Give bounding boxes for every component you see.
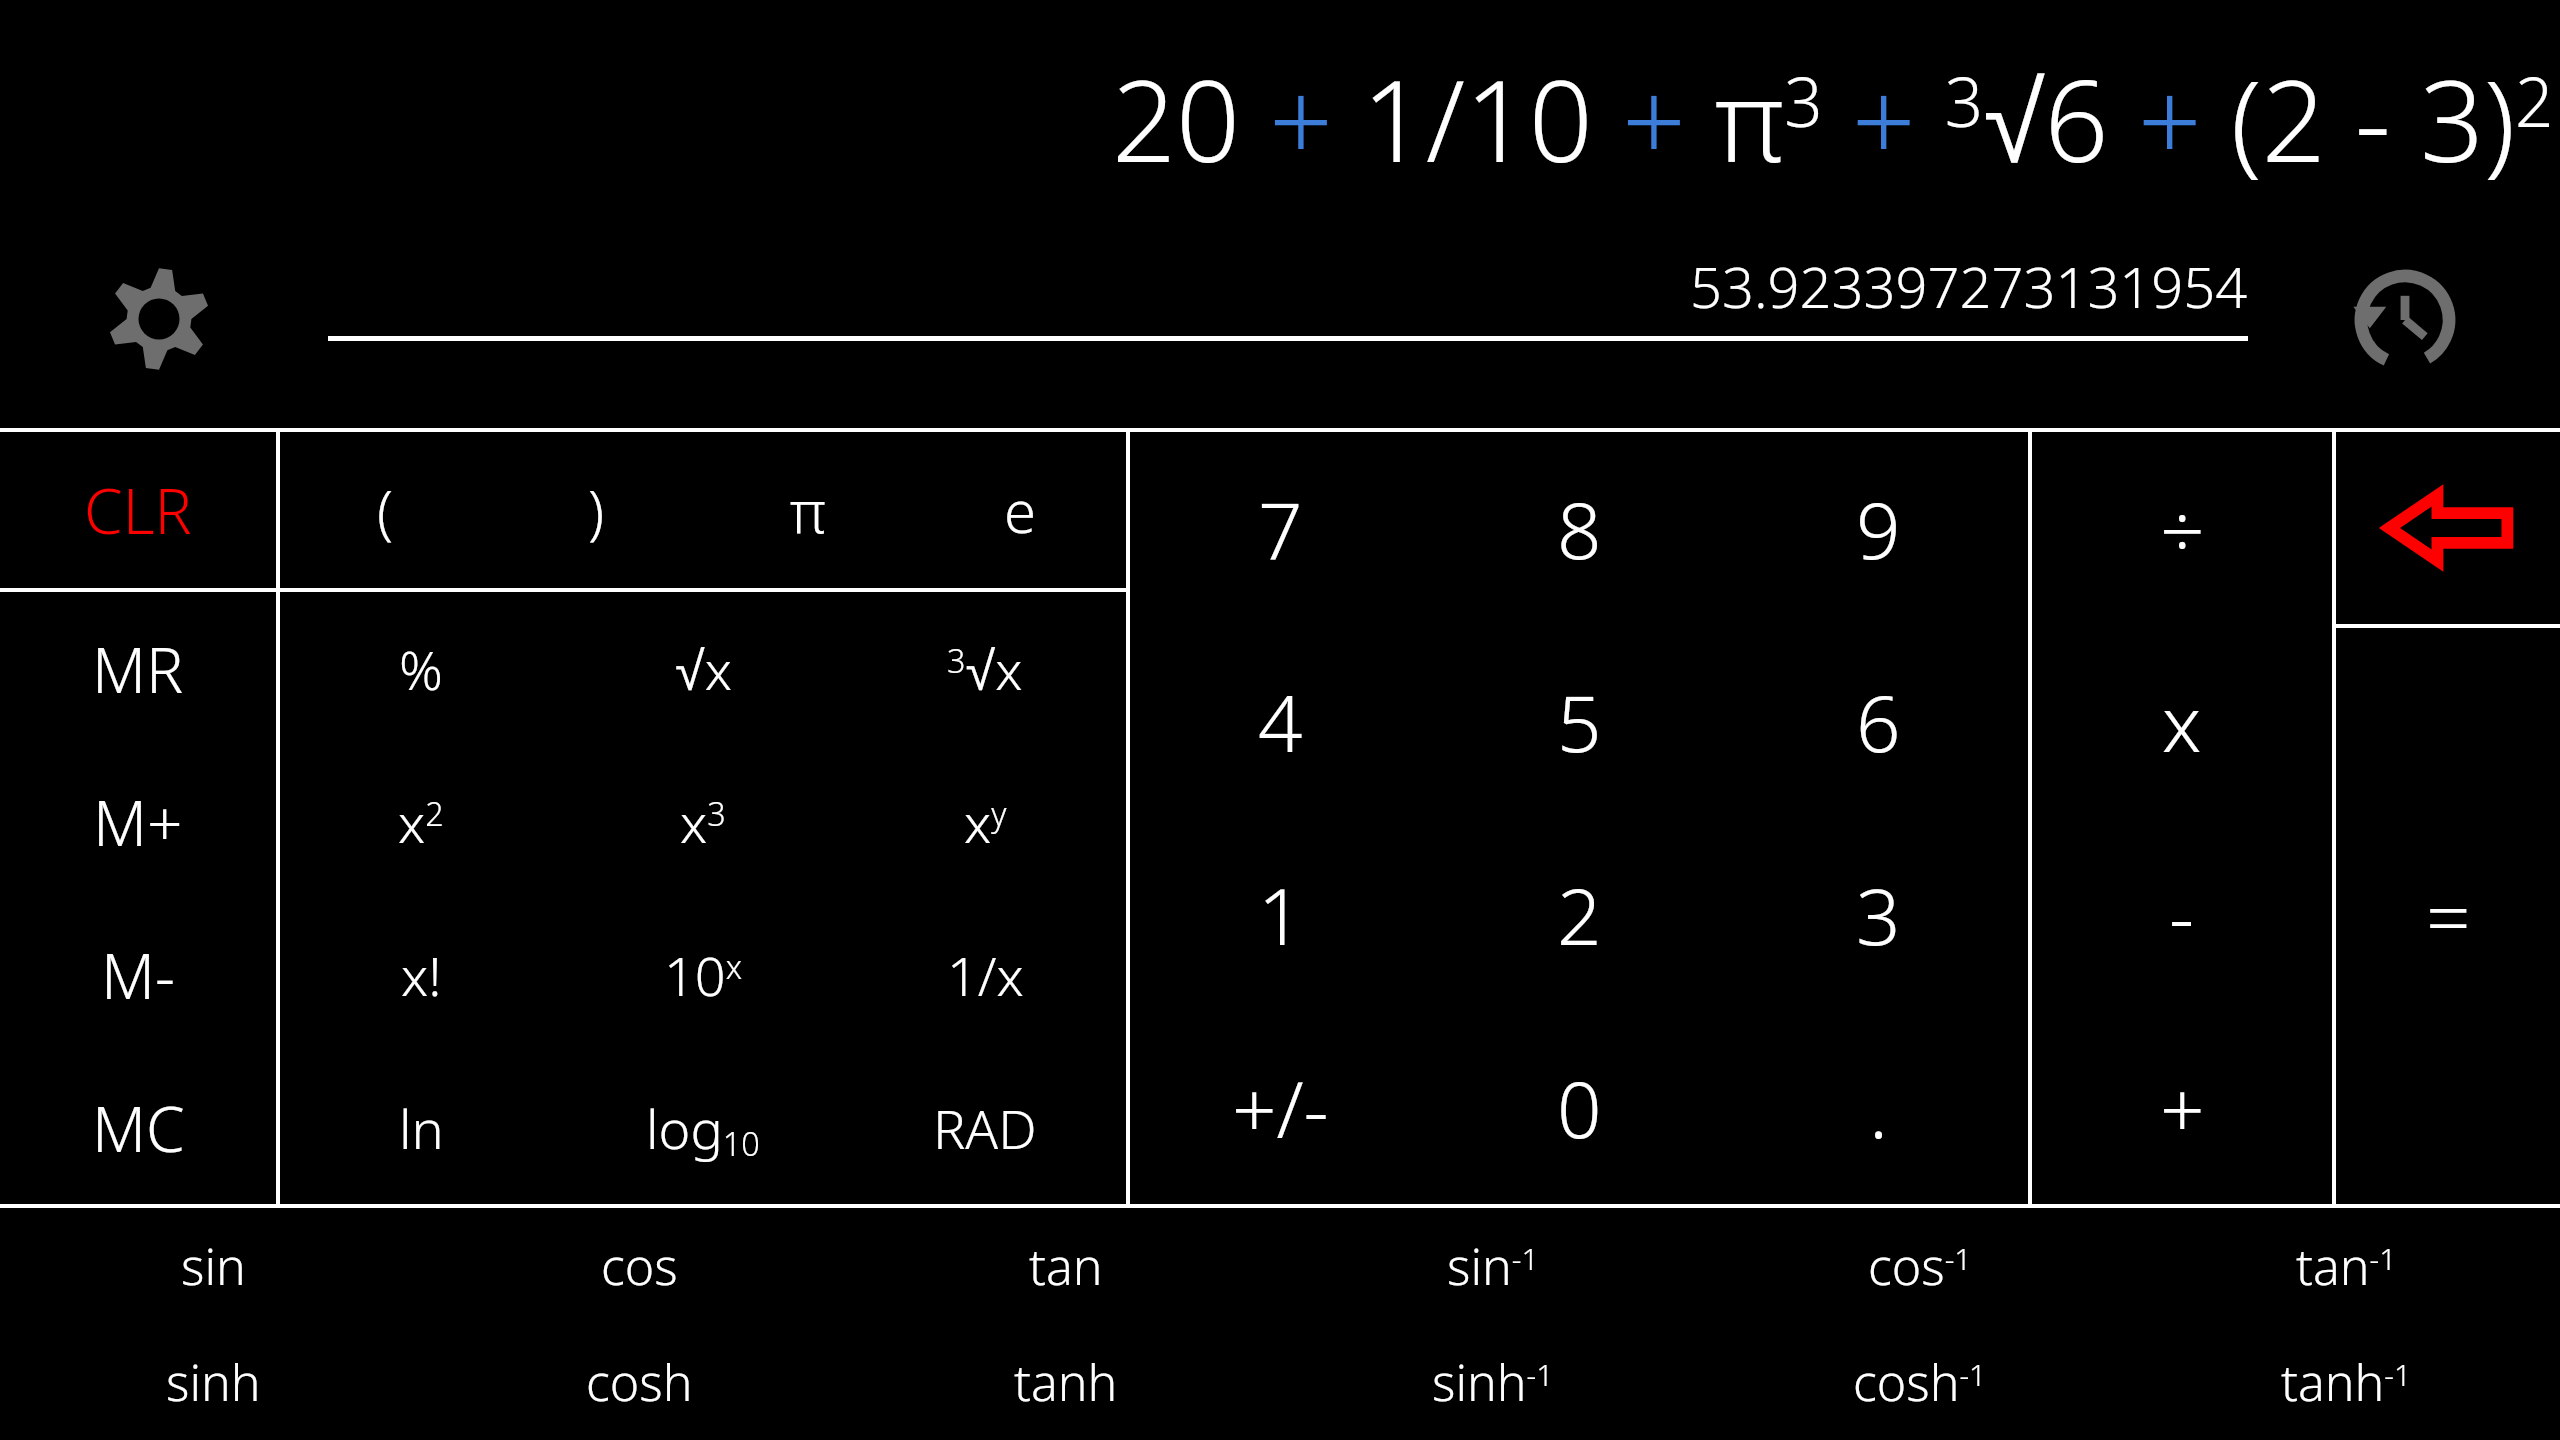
- button[interactable]: 1: [1130, 818, 1430, 1011]
- button[interactable]: tanh-1: [2133, 1324, 2560, 1440]
- button[interactable]: %: [280, 592, 562, 745]
- button[interactable]: π: [702, 432, 914, 588]
- staticText: %: [399, 632, 443, 706]
- staticText: =: [2426, 863, 2471, 969]
- button[interactable]: Backspace: [2336, 432, 2560, 624]
- button[interactable]: MC: [0, 1051, 276, 1204]
- staticText: 1/x: [947, 938, 1024, 1012]
- button[interactable]: 5: [1430, 625, 1729, 818]
- staticText: cos: [601, 1232, 678, 1300]
- button[interactable]: 1/x: [844, 898, 1126, 1051]
- staticText: 20 + 1/10 + π3 + 3√6 + (2 - 3)2: [1112, 42, 2554, 195]
- staticText: x3: [680, 785, 726, 859]
- staticText: tan: [1029, 1232, 1103, 1300]
- button[interactable]: sin: [0, 1208, 426, 1324]
- staticText: 0: [1557, 1055, 1602, 1161]
- button[interactable]: ): [491, 432, 702, 588]
- staticText: 3√x: [947, 632, 1023, 706]
- staticText: 7: [1258, 476, 1303, 582]
- staticText: +/-: [1232, 1055, 1329, 1161]
- staticText: M+: [93, 780, 183, 864]
- staticText: tanh-1: [2281, 1348, 2412, 1416]
- button[interactable]: ÷: [2032, 432, 2332, 625]
- staticText: RAD: [933, 1091, 1037, 1165]
- button[interactable]: 0: [1430, 1011, 1729, 1204]
- staticText: 2: [1557, 862, 1602, 968]
- staticText: 1: [1258, 862, 1303, 968]
- button[interactable]: 3: [1729, 818, 2028, 1011]
- staticText: .: [1869, 1055, 1889, 1161]
- staticText: e: [1004, 471, 1037, 550]
- staticText: x: [2162, 669, 2202, 775]
- staticText: CLR: [84, 468, 192, 552]
- button[interactable]: sin-1: [1279, 1208, 1706, 1324]
- button[interactable]: +/-: [1130, 1011, 1430, 1204]
- button[interactable]: RAD: [844, 1051, 1126, 1204]
- staticText: log10: [646, 1091, 760, 1165]
- button[interactable]: cosh-1: [1706, 1324, 2133, 1440]
- staticText: 6: [1856, 669, 1901, 775]
- staticText: x2: [398, 785, 444, 859]
- staticText: 53.923397273131954: [1690, 248, 2248, 324]
- staticText: cos-1: [1868, 1232, 1972, 1300]
- button[interactable]: History: [2350, 265, 2460, 375]
- button[interactable]: x: [2032, 625, 2332, 818]
- button[interactable]: ln: [280, 1051, 562, 1204]
- button[interactable]: x3: [562, 745, 844, 898]
- button[interactable]: 6: [1729, 625, 2028, 818]
- button[interactable]: e: [914, 432, 1126, 588]
- staticText: 8: [1557, 476, 1602, 582]
- button[interactable]: .: [1729, 1011, 2028, 1204]
- button[interactable]: -: [2032, 818, 2332, 1011]
- button[interactable]: M-: [0, 898, 276, 1051]
- button[interactable]: x2: [280, 745, 562, 898]
- button[interactable]: x!: [280, 898, 562, 1051]
- button[interactable]: 2: [1430, 818, 1729, 1011]
- button[interactable]: tan-1: [2133, 1208, 2560, 1324]
- button[interactable]: √x: [562, 592, 844, 745]
- button[interactable]: CLR: [0, 432, 276, 588]
- button[interactable]: xy: [844, 745, 1126, 898]
- staticText: x!: [401, 938, 442, 1012]
- staticText: M-: [101, 933, 176, 1017]
- staticText: √x: [675, 632, 732, 706]
- button[interactable]: 8: [1430, 432, 1729, 625]
- button[interactable]: 9: [1729, 432, 2028, 625]
- staticText: ln: [399, 1091, 444, 1165]
- button[interactable]: M+: [0, 745, 276, 898]
- button[interactable]: tanh: [852, 1324, 1279, 1440]
- button[interactable]: =: [2336, 628, 2560, 1204]
- button[interactable]: cos-1: [1706, 1208, 2133, 1324]
- staticText: sinh: [166, 1348, 261, 1416]
- staticText: 3: [1856, 862, 1901, 968]
- staticText: 10x: [664, 938, 742, 1012]
- staticText: π: [790, 471, 826, 550]
- staticText: 4: [1258, 669, 1303, 775]
- button[interactable]: Settings: [105, 265, 213, 373]
- staticText: MC: [92, 1086, 185, 1170]
- button[interactable]: log10: [562, 1051, 844, 1204]
- button[interactable]: tan: [852, 1208, 1279, 1324]
- button[interactable]: sinh-1: [1279, 1324, 1706, 1440]
- staticText: cosh-1: [1853, 1348, 1987, 1416]
- staticText: +: [2160, 1055, 2205, 1161]
- staticText: sin-1: [1447, 1232, 1539, 1300]
- staticText: ÷: [2160, 476, 2205, 582]
- button[interactable]: 10x: [562, 898, 844, 1051]
- button[interactable]: cos: [426, 1208, 852, 1324]
- staticText: sin: [181, 1232, 246, 1300]
- staticText: MR: [92, 627, 184, 711]
- button[interactable]: 4: [1130, 625, 1430, 818]
- staticText: (: [377, 471, 394, 550]
- staticText: cosh: [586, 1348, 693, 1416]
- button[interactable]: sinh: [0, 1324, 426, 1440]
- button[interactable]: MR: [0, 592, 276, 745]
- button[interactable]: 3√x: [844, 592, 1126, 745]
- staticText: 5: [1557, 669, 1602, 775]
- button[interactable]: (: [280, 432, 491, 588]
- button[interactable]: 7: [1130, 432, 1430, 625]
- button[interactable]: cosh: [426, 1324, 852, 1440]
- staticText: ): [588, 471, 605, 550]
- button[interactable]: +: [2032, 1011, 2332, 1204]
- staticText: -: [2169, 862, 2195, 968]
